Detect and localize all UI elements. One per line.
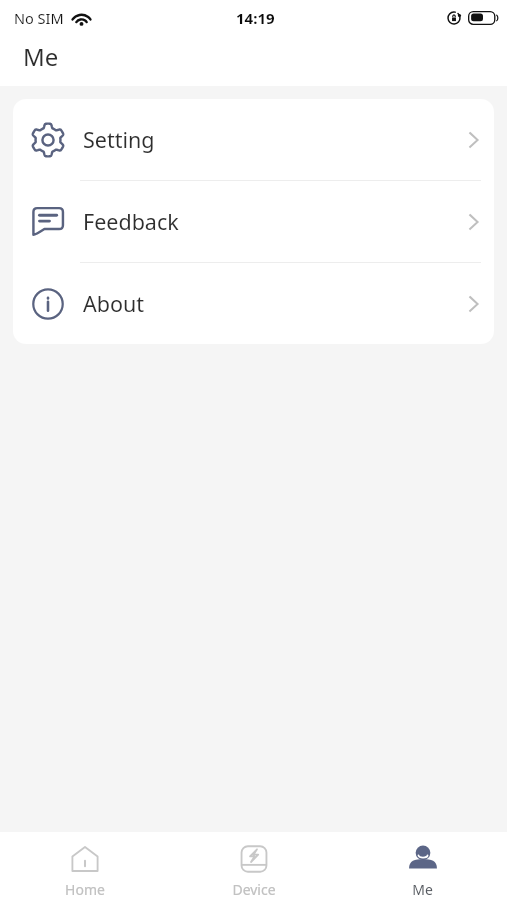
staticText: Me xyxy=(412,880,433,899)
staticText: Setting xyxy=(83,125,155,154)
button[interactable]: Feedback xyxy=(13,181,494,262)
button[interactable]: Me xyxy=(338,832,507,899)
button[interactable]: Home xyxy=(0,832,169,899)
staticText: About xyxy=(83,289,145,318)
staticText: No SIM xyxy=(14,8,64,28)
staticText: Feedback xyxy=(83,207,179,236)
button[interactable]: Device xyxy=(169,832,338,899)
button[interactable]: Setting xyxy=(13,99,494,180)
staticText: Device xyxy=(232,880,276,899)
staticText: 14:19 xyxy=(236,8,275,28)
staticText: Home xyxy=(65,880,105,899)
button[interactable]: About xyxy=(13,263,494,344)
staticText: Me xyxy=(23,40,59,73)
